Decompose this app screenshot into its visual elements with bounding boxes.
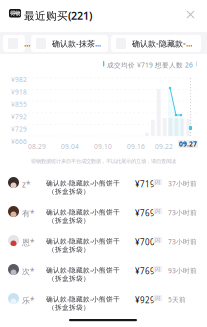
staticText: z*: [22, 179, 30, 190]
button[interactable]: Close: [181, 5, 200, 24]
staticText: 93小时前: [168, 266, 197, 275]
button[interactable]: 乐*: [0, 288, 207, 317]
button[interactable]: 次*: [0, 259, 207, 288]
button[interactable]: 确认款-隐藏款-…: [111, 35, 201, 52]
staticText: （拆盒拆袋）: [48, 274, 90, 283]
staticText: ¥700: [135, 237, 155, 247]
staticText: 37小时前: [168, 179, 197, 188]
staticText: 有*: [22, 208, 34, 219]
staticText: ¥719: [135, 179, 155, 189]
staticText: ¥729: [11, 125, 27, 133]
staticText: 确认款-隐藏款-小熊饼干: [46, 265, 120, 274]
staticText: 闪: [155, 266, 160, 272]
staticText: 09.16: [127, 142, 145, 151]
staticText: 73小时前: [168, 237, 197, 246]
staticText: 09.10: [94, 142, 112, 151]
staticText: ¥918: [11, 87, 27, 96]
staticText: 闪: [155, 179, 160, 185]
staticText: 闪: [155, 208, 160, 214]
staticText: 08.29: [28, 142, 46, 151]
staticText: …: [24, 38, 30, 49]
staticText: ¥855: [11, 100, 27, 109]
staticText: 确认款-隐藏款-…: [132, 38, 192, 49]
staticText: ¥666: [11, 137, 27, 146]
staticText: ¥982: [11, 75, 27, 84]
button[interactable]: …: [3, 35, 25, 52]
staticText: 确认款-隐藏款-小熊饼干: [46, 294, 120, 303]
staticText: 闪: [155, 237, 160, 243]
staticText: 确认款-隐藏款-小熊饼干: [46, 178, 120, 187]
button[interactable]: 恩*: [0, 230, 207, 259]
staticText: 确认款-隐藏款-小熊饼干: [46, 207, 120, 216]
staticText: 恩*: [22, 237, 34, 248]
button[interactable]: 有*: [0, 201, 207, 230]
staticText: 09.27: [179, 140, 197, 148]
staticText: 次*: [22, 266, 34, 277]
staticText: 得物: [10, 10, 20, 17]
staticText: 确认款-隐藏款-小熊饼干: [46, 236, 120, 245]
staticText: 乐*: [22, 295, 34, 306]
staticText: 想要人数 26: [155, 60, 193, 69]
staticText: 09.04: [61, 142, 79, 151]
staticText: （拆盒拆袋）: [48, 216, 90, 225]
staticText: 最近购买(221): [24, 8, 92, 23]
staticText: 73小时前: [168, 208, 197, 217]
staticText: 闪: [155, 295, 160, 301]
staticText: （拆盒拆袋）: [48, 187, 90, 196]
staticText: 成交均价 ¥719: [107, 60, 153, 69]
staticText: （拆盒拆袋）: [48, 245, 90, 254]
staticText: （拆盒拆袋）: [48, 303, 90, 312]
staticText: ¥769: [135, 208, 155, 218]
staticText: ¥929: [135, 295, 155, 305]
button[interactable]: 确认款-抹茶酥…: [31, 35, 108, 52]
button[interactable]: z*: [0, 172, 207, 201]
staticText: 09.22: [155, 142, 173, 151]
staticText: 得物数据统计来自平台成交数据，不以此展示的立场，请自查阅读: [31, 158, 176, 165]
staticText: ¥769: [135, 266, 155, 276]
staticText: 5天前: [168, 295, 186, 304]
staticText: 确认款-抹茶酥…: [52, 38, 108, 49]
staticText: ¥792: [11, 112, 27, 121]
